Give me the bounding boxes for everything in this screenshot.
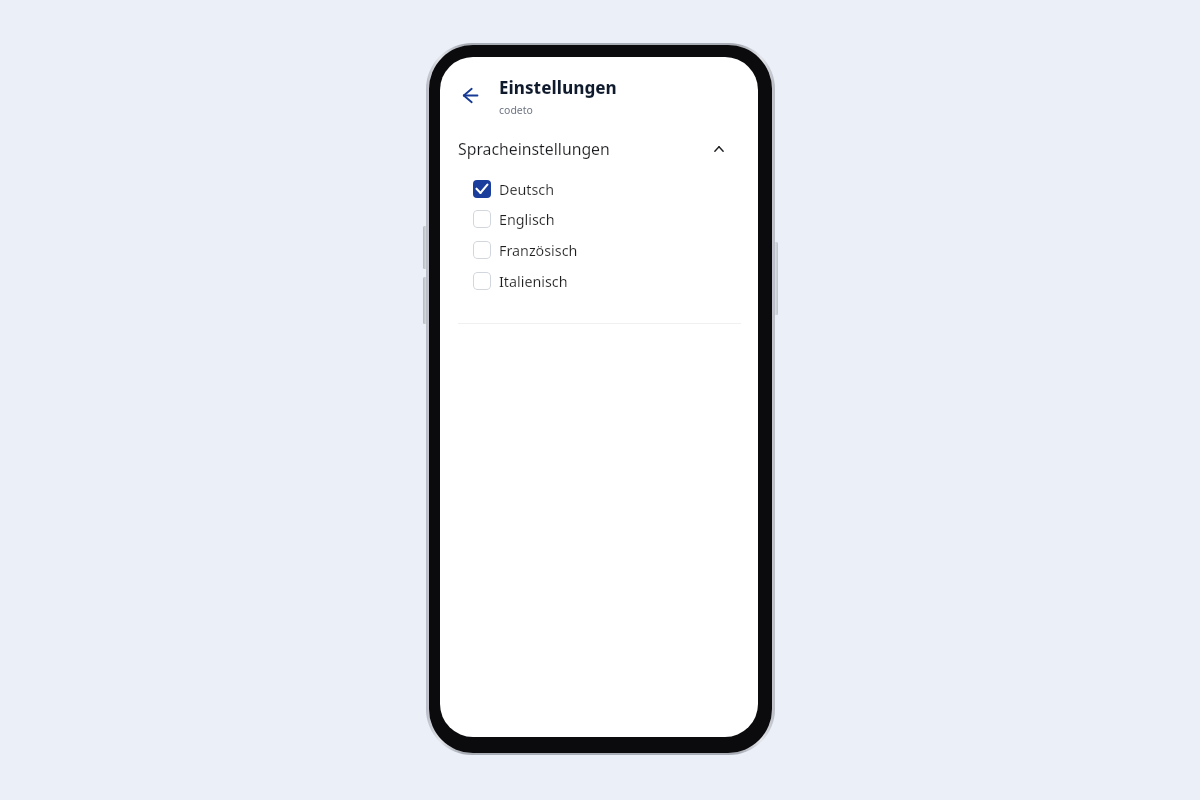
staticText: Einstellungen xyxy=(499,76,617,99)
staticText: Spracheinstellungen xyxy=(458,138,610,160)
button[interactable]: Spracheinstellungen xyxy=(440,133,758,165)
button[interactable]: Back xyxy=(452,77,488,113)
staticText: Deutsch xyxy=(499,180,555,199)
staticText: Englisch xyxy=(499,210,555,229)
staticText: codeto xyxy=(499,103,533,117)
button[interactable]: Deutsch xyxy=(440,174,758,204)
button[interactable]: Englisch xyxy=(440,204,758,234)
button[interactable]: Italienisch xyxy=(440,266,758,296)
staticText: Französisch xyxy=(499,241,578,260)
button[interactable]: Französisch xyxy=(440,235,758,265)
staticText: Italienisch xyxy=(499,272,568,291)
